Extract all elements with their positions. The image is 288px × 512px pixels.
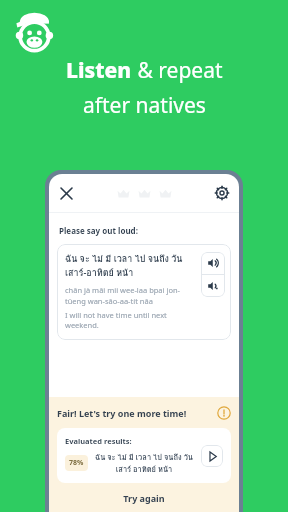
staticText: Fair! Let's try one more time! <box>57 407 217 419</box>
staticText: after natives <box>83 91 206 120</box>
staticText: chǎn jà mâi mii wee-laa bpai jon-tǔeng w… <box>65 285 191 306</box>
button[interactable]: Settings <box>210 181 234 205</box>
staticText: I will not have time until next weekend. <box>65 310 191 330</box>
staticText: ฉัน จะ ไม่ มี เวลา ไป จนถึง วันเสาร์ อาท… <box>93 451 195 475</box>
staticText: Evaluated results: <box>65 436 132 446</box>
button[interactable]: Try again <box>57 492 231 504</box>
staticText: Please say out loud: <box>59 225 138 236</box>
button[interactable]: Play audio <box>201 252 225 274</box>
other: Ling app logo <box>12 10 56 54</box>
button[interactable]: Close <box>54 181 78 205</box>
button[interactable]: ฉัน จะ ไม่ มี เวลา ไป จนถึง วันเสาร์-อาท… <box>57 244 231 340</box>
button[interactable]: Play slow audio <box>201 275 225 297</box>
staticText: 78% <box>69 458 84 468</box>
button[interactable]: Info <box>217 406 231 420</box>
staticText: & repeat <box>132 56 223 85</box>
staticText: ฉัน จะ ไม่ มี เวลา ไป จนถึง วันเสาร์-อาท… <box>65 252 191 280</box>
button[interactable]: Play recording <box>201 445 223 467</box>
staticText: Listen <box>66 56 132 85</box>
button[interactable]: Evaluated results: <box>57 428 231 483</box>
